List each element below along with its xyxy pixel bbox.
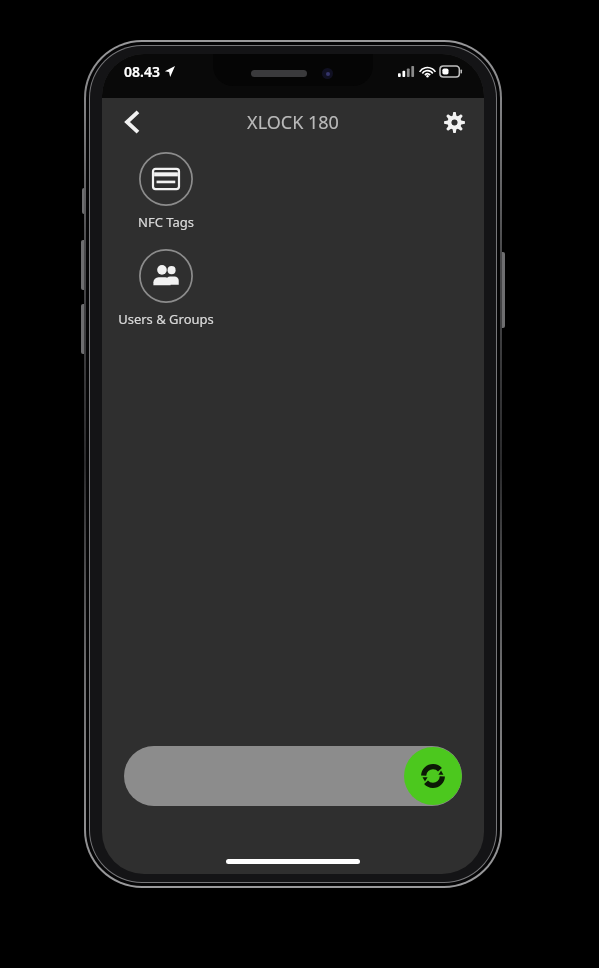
button[interactable]: Users & Groups	[118, 247, 214, 330]
staticText: 08.43	[124, 62, 160, 81]
button[interactable]: NFC Tags	[118, 150, 214, 233]
staticText: XLOCK 180	[247, 110, 339, 135]
staticText: Users & Groups	[118, 310, 214, 328]
button[interactable]: Unlock slider	[124, 746, 462, 806]
staticText: NFC Tags	[138, 213, 194, 231]
button[interactable]: Back	[110, 100, 154, 144]
button[interactable]: Settings	[432, 100, 476, 144]
button[interactable]: Sync	[404, 747, 462, 805]
